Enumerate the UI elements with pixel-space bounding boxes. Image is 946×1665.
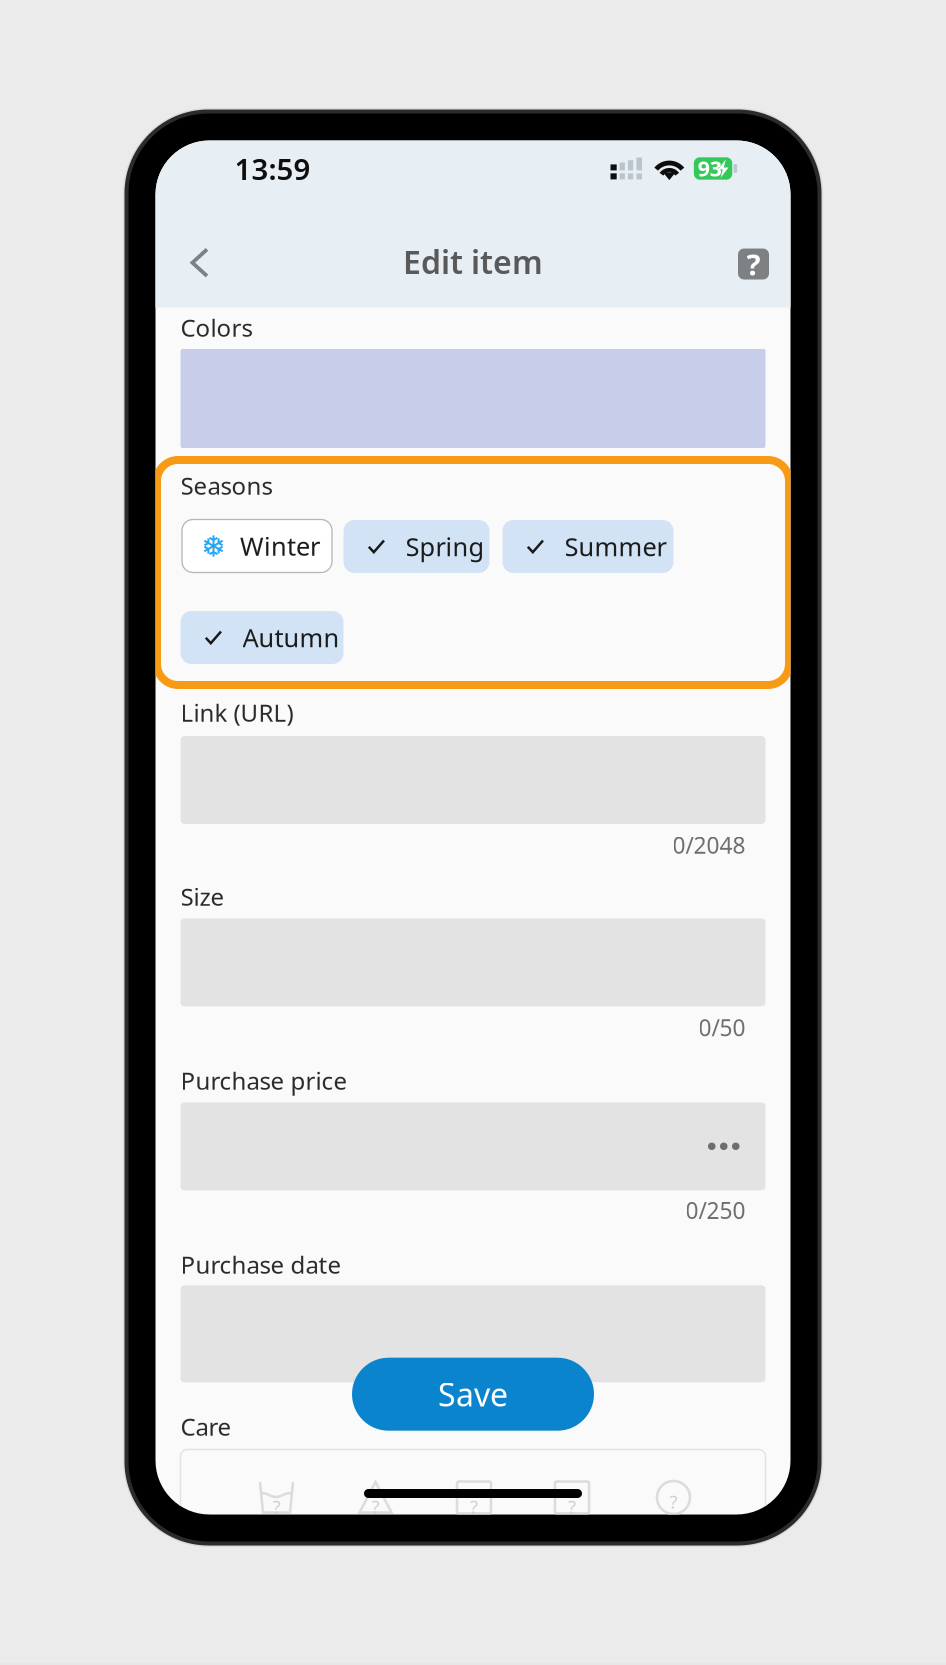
- staticText: 0/250: [685, 1195, 745, 1225]
- button[interactable]: Autumn: [180, 611, 343, 664]
- staticText: Save: [438, 1373, 508, 1415]
- button[interactable]: Help: [725, 236, 781, 292]
- button[interactable]: Winter: [182, 519, 332, 572]
- staticText: Spring: [405, 530, 484, 563]
- button[interactable]: Spring: [343, 520, 489, 573]
- staticText: ?: [272, 1494, 280, 1519]
- staticText: Purchase price: [180, 1065, 347, 1096]
- staticText: Colors: [180, 312, 252, 343]
- staticText: 93: [698, 154, 722, 182]
- staticText: Winter: [240, 529, 320, 563]
- staticText: ?: [746, 244, 760, 283]
- staticText: ?: [371, 1494, 379, 1519]
- staticText: Summer: [564, 530, 666, 563]
- staticText: 13:59: [234, 149, 310, 188]
- staticText: Autumn: [242, 621, 339, 654]
- button[interactable]: Summer: [502, 520, 673, 573]
- staticText: Size: [180, 881, 224, 912]
- staticText: Care: [180, 1411, 231, 1442]
- button[interactable]: Save: [352, 1358, 594, 1431]
- staticText: Seasons: [180, 470, 272, 501]
- staticText: Edit item: [403, 240, 543, 283]
- staticText: 0/2048: [672, 830, 745, 860]
- staticText: 0/50: [698, 1012, 745, 1042]
- staticText: Link (URL): [180, 697, 293, 728]
- staticText: Purchase date: [180, 1249, 341, 1280]
- staticText: ?: [568, 1494, 576, 1519]
- button[interactable]: Back: [169, 231, 229, 293]
- staticText: ?: [669, 1489, 677, 1514]
- staticText: ?: [470, 1494, 478, 1519]
